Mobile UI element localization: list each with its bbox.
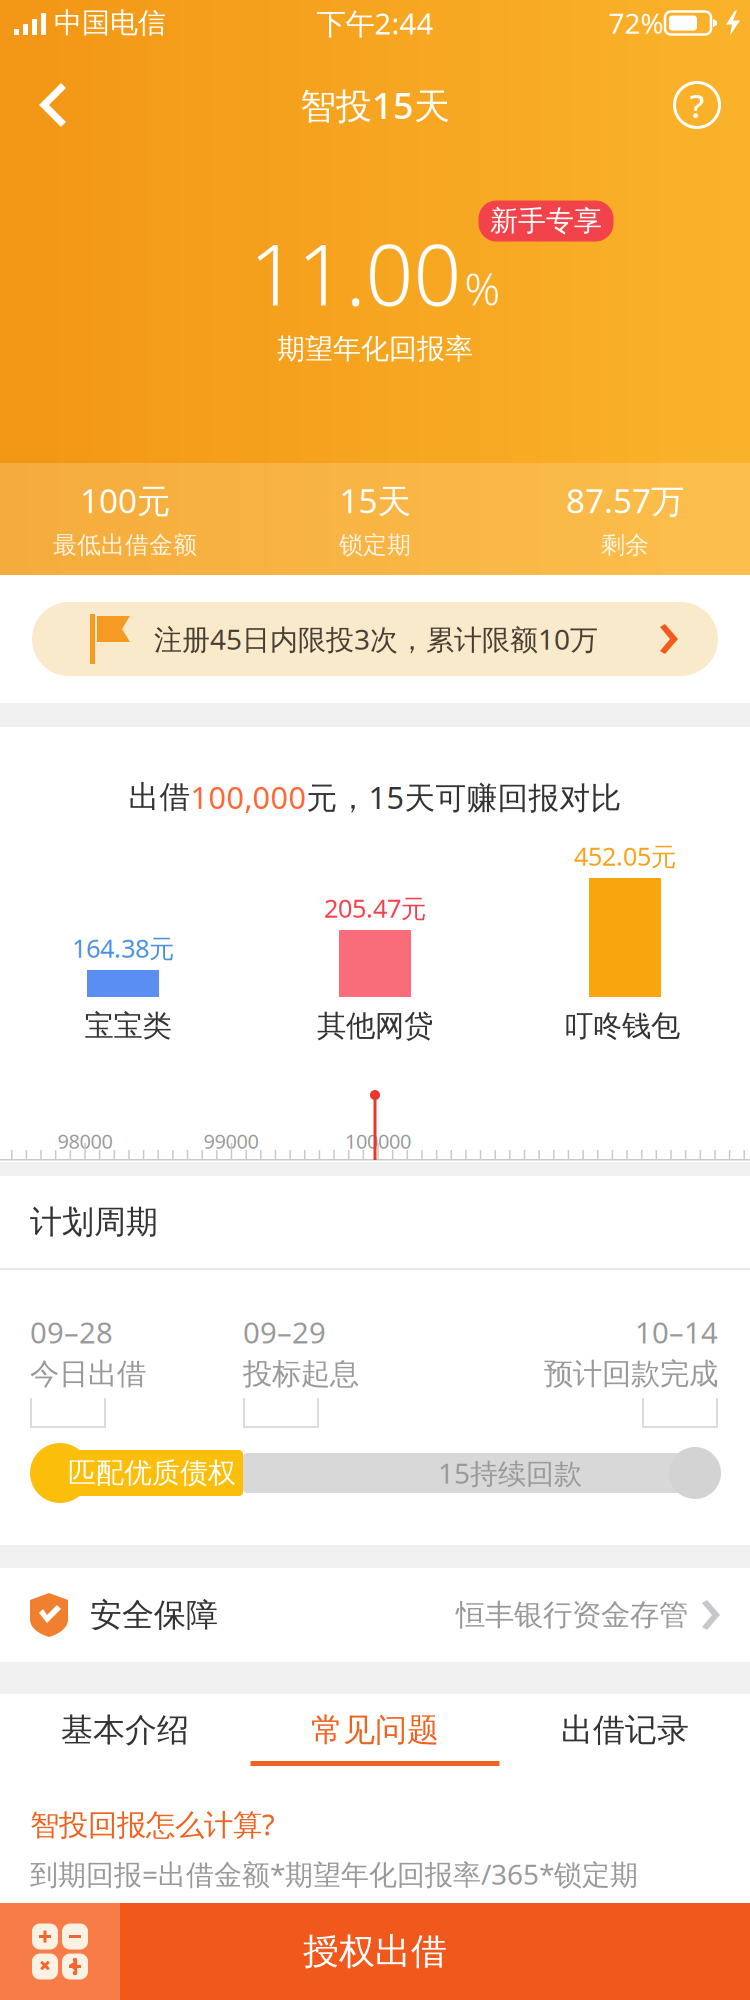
staticText: 出借记录 (561, 1710, 689, 1750)
button[interactable]: 基本介绍 (0, 1694, 250, 1766)
staticText: 叮咚钱包 (564, 1008, 680, 1044)
staticText: 87.57万 (566, 478, 684, 522)
staticText: 其他网贷 (317, 1008, 433, 1044)
button[interactable]: 出借记录 (500, 1694, 750, 1766)
staticText: 452.05元 (574, 839, 676, 873)
staticText: 11.00 (249, 217, 461, 329)
staticText: 常见问题 (311, 1710, 439, 1750)
staticText: 锁定期 (339, 530, 411, 560)
staticText: 15持续回款 (438, 1454, 582, 1492)
button[interactable]: Help (662, 70, 732, 140)
staticText: 期望年化回报率 (277, 332, 473, 366)
staticText: 205.47元 (324, 891, 426, 925)
staticText: ? (689, 83, 704, 127)
button[interactable]: 常见问题 (250, 1694, 500, 1766)
staticText: 15天 (339, 478, 410, 522)
staticText: 注册45日内限投3次，累计限额10万 (154, 620, 598, 658)
staticText: 下午2:44 (316, 3, 433, 42)
staticText: 授权出借 (303, 1929, 447, 1974)
staticText: 基本介绍 (61, 1710, 189, 1750)
staticText: 匹配优质债权 (68, 1456, 236, 1490)
staticText: 剩余 (601, 530, 649, 560)
staticText: 99000 (203, 1128, 258, 1154)
staticText: 投标起息 (243, 1356, 359, 1392)
staticText: 元，15天可赚回报对比 (306, 777, 621, 817)
staticText: 100元 (80, 478, 170, 522)
staticText: 100000 (345, 1128, 411, 1154)
staticText: 安全保障 (90, 1595, 218, 1635)
button[interactable]: 注册45日内限投3次，累计限额10万 (32, 602, 718, 676)
staticText: 到期回报=出借金额*期望年化回报率/365*锁定期 (30, 1855, 638, 1893)
staticText: 09–28 (30, 1312, 113, 1351)
staticText: 最低出借金额 (53, 530, 197, 560)
staticText: 98000 (57, 1128, 112, 1154)
staticText: 计划周期 (30, 1202, 158, 1242)
staticText: 100,000 (190, 777, 306, 817)
button[interactable]: 安全保障 (0, 1568, 750, 1662)
staticText: 164.38元 (72, 931, 174, 965)
staticText: 出借 (128, 778, 190, 816)
staticText: 09–29 (243, 1312, 326, 1351)
staticText: 中国电信 (54, 6, 166, 40)
staticText: 恒丰银行资金存管 (456, 1597, 688, 1633)
staticText: % (464, 259, 500, 318)
button[interactable]: 收益计算器 (0, 1903, 120, 2000)
staticText: 智投回报怎么计算? (30, 1804, 275, 1843)
staticText: 智投15天 (300, 81, 450, 129)
staticText: 10–14 (635, 1312, 718, 1351)
button[interactable]: 授权出借 (120, 1903, 750, 2000)
staticText: 72% (608, 4, 663, 42)
staticText: 新手专享 (490, 204, 602, 238)
button[interactable]: Back (7, 71, 89, 139)
staticText: 宝宝类 (84, 1008, 171, 1044)
staticText: 今日出借 (30, 1356, 146, 1392)
staticText: 预计回款完成 (544, 1356, 718, 1392)
